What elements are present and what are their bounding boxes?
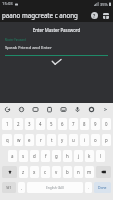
staticText: 5 bbox=[50, 121, 53, 127]
staticText: t bbox=[51, 137, 53, 143]
button[interactable]: 8 bbox=[80, 118, 89, 130]
staticText: 8 bbox=[83, 121, 86, 127]
button[interactable]: Search bbox=[1, 103, 14, 116]
staticText: f bbox=[45, 153, 47, 159]
button[interactable]: k bbox=[85, 150, 94, 162]
button[interactable]: t bbox=[47, 134, 56, 146]
button[interactable]: u bbox=[69, 134, 78, 146]
staticText: Enter Master Password bbox=[0, 27, 113, 33]
staticText: x bbox=[33, 169, 36, 175]
button[interactable]: c bbox=[41, 166, 50, 178]
button[interactable]: Confirm password bbox=[50, 58, 63, 66]
button[interactable]: h bbox=[63, 150, 72, 162]
staticText: j bbox=[78, 153, 80, 159]
button[interactable]: Backspace bbox=[96, 166, 111, 178]
staticText: o bbox=[94, 137, 97, 143]
staticText: g bbox=[55, 153, 58, 159]
button[interactable]: r bbox=[36, 134, 45, 146]
staticText: 6 bbox=[61, 121, 64, 127]
button[interactable]: GIF bbox=[28, 103, 42, 116]
staticText: n bbox=[77, 169, 80, 175]
button[interactable]: Translate bbox=[56, 103, 70, 116]
button[interactable]: . bbox=[85, 182, 92, 193]
button[interactable]: , bbox=[18, 182, 25, 193]
staticText: , bbox=[21, 185, 23, 190]
button[interactable]: m bbox=[85, 166, 94, 178]
button[interactable]: 5 bbox=[47, 118, 56, 130]
staticText: paano magcreate c anong bbox=[2, 11, 78, 19]
button[interactable]: Done bbox=[94, 182, 111, 193]
staticText: 7 bbox=[72, 121, 75, 127]
button[interactable]: Switch account bbox=[100, 10, 111, 21]
staticText: c bbox=[44, 169, 47, 175]
staticText: !#1 bbox=[6, 185, 12, 190]
staticText: h bbox=[66, 153, 69, 159]
button[interactable]: q bbox=[2, 134, 12, 146]
button[interactable]: z bbox=[19, 166, 28, 178]
staticText: English (AU) bbox=[46, 186, 64, 190]
button[interactable]: b bbox=[63, 166, 72, 178]
button[interactable]: 7 bbox=[69, 118, 78, 130]
staticText: s bbox=[22, 153, 25, 159]
button[interactable]: Voice input bbox=[70, 103, 84, 116]
button[interactable]: !#1 bbox=[2, 182, 16, 193]
staticText: 35% bbox=[100, 2, 108, 7]
staticText: z bbox=[22, 169, 25, 175]
button[interactable]: y bbox=[58, 134, 67, 146]
staticText: b bbox=[66, 169, 69, 175]
button[interactable]: f bbox=[41, 150, 50, 162]
staticText: 4 bbox=[39, 121, 42, 127]
staticText: v bbox=[55, 169, 58, 175]
staticText: 9 bbox=[94, 121, 97, 127]
button[interactable]: o bbox=[91, 134, 100, 146]
button[interactable]: w bbox=[14, 134, 23, 146]
button[interactable]: v bbox=[52, 166, 61, 178]
staticText: Speak Friend and Enter bbox=[5, 44, 52, 50]
staticText: ? bbox=[93, 13, 96, 19]
button[interactable]: Clipboard bbox=[42, 103, 56, 116]
button[interactable]: 4 bbox=[36, 118, 45, 130]
button[interactable]: j bbox=[74, 150, 83, 162]
button[interactable]: s bbox=[19, 150, 28, 162]
staticText: 0 bbox=[105, 121, 108, 127]
button[interactable]: i bbox=[80, 134, 89, 146]
button[interactable]: Help bbox=[89, 10, 100, 21]
button[interactable]: 3 bbox=[25, 118, 34, 130]
button[interactable]: 9 bbox=[91, 118, 100, 130]
staticText: 3 bbox=[28, 121, 31, 127]
button[interactable]: x bbox=[30, 166, 39, 178]
button[interactable]: Settings bbox=[84, 103, 98, 116]
staticText: i bbox=[84, 137, 86, 143]
button[interactable]: p bbox=[102, 134, 111, 146]
button[interactable]: Space bbox=[27, 182, 83, 193]
staticText: 15:03 bbox=[2, 1, 13, 7]
staticText: 2 bbox=[17, 121, 20, 127]
staticText: Master Password bbox=[5, 38, 26, 42]
button[interactable]: 6 bbox=[58, 118, 67, 130]
staticText: w bbox=[17, 137, 21, 143]
staticText: u bbox=[72, 137, 75, 143]
button[interactable]: 2 bbox=[14, 118, 23, 130]
button[interactable]: Shift bbox=[2, 166, 17, 178]
staticText: p bbox=[105, 137, 108, 143]
button[interactable]: d bbox=[30, 150, 39, 162]
button[interactable]: n bbox=[74, 166, 83, 178]
button[interactable]: l bbox=[96, 150, 105, 162]
staticText: e bbox=[28, 137, 31, 143]
staticText: l bbox=[100, 153, 102, 159]
staticText: m bbox=[87, 169, 92, 175]
button[interactable]: g bbox=[52, 150, 61, 162]
button[interactable]: a bbox=[8, 150, 17, 162]
staticText: q bbox=[6, 137, 9, 143]
button[interactable]: e bbox=[25, 134, 34, 146]
staticText: Done bbox=[98, 185, 107, 190]
staticText: . bbox=[88, 185, 90, 190]
button[interactable]: Stickers bbox=[14, 103, 28, 116]
staticText: 1 bbox=[6, 121, 9, 127]
staticText: k bbox=[88, 153, 91, 159]
staticText: a bbox=[11, 153, 14, 159]
button[interactable]: More bbox=[98, 103, 112, 116]
button[interactable]: 0 bbox=[102, 118, 111, 130]
staticText: y bbox=[61, 137, 64, 143]
button[interactable]: 1 bbox=[2, 118, 12, 130]
